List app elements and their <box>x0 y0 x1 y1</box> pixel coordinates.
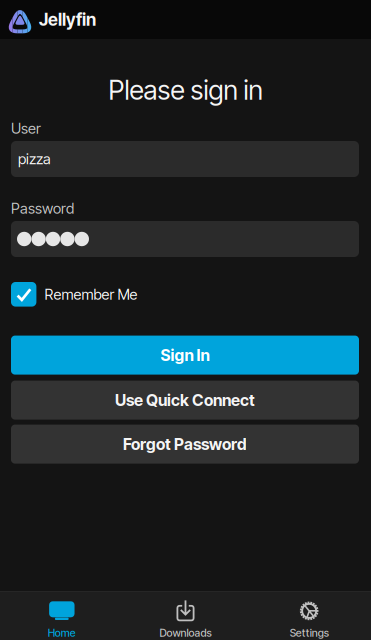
button[interactable]: Remember Me <box>11 282 359 307</box>
staticText: Remember Me <box>44 285 137 303</box>
staticText: Forgot Password <box>123 434 247 454</box>
button[interactable]: Sign In <box>11 336 359 375</box>
button[interactable]: Settings <box>247 592 371 640</box>
button[interactable]: Use Quick Connect <box>11 381 359 420</box>
button[interactable]: Downloads <box>124 592 247 640</box>
staticText: Use Quick Connect <box>115 390 255 410</box>
staticText: Settings <box>290 626 329 639</box>
staticText: Downloads <box>159 626 211 639</box>
staticText: Home <box>48 626 76 639</box>
button[interactable]: Home <box>0 592 124 640</box>
staticText: Sign In <box>160 345 209 365</box>
button[interactable]: Forgot Password <box>11 425 359 464</box>
staticText: Please sign in <box>108 74 262 106</box>
staticText: Jellyfin <box>39 9 96 30</box>
staticText: Password <box>11 200 74 217</box>
staticText: pizza <box>18 150 51 168</box>
staticText: User <box>11 120 41 137</box>
